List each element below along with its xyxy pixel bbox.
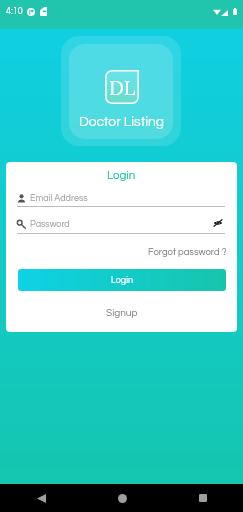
button[interactable]: Login <box>18 269 226 291</box>
staticText: 4:10 <box>6 7 23 16</box>
button[interactable]: Show password <box>207 212 229 234</box>
staticText: DL <box>109 75 136 101</box>
staticText: Doctor Listing <box>79 115 165 129</box>
button[interactable]: Home <box>102 484 142 512</box>
staticText: Email Address <box>30 194 88 203</box>
button[interactable]: Back <box>21 484 61 512</box>
staticText: Signup <box>106 308 138 318</box>
staticText: Forgot password ? <box>148 247 227 257</box>
button[interactable]: Signup <box>6 308 237 318</box>
staticText: Password <box>30 220 70 229</box>
staticText: Login <box>111 276 134 285</box>
staticText: Login <box>107 170 136 182</box>
button[interactable]: Recent apps <box>183 484 223 512</box>
button[interactable]: Forgot password ? <box>144 244 231 260</box>
